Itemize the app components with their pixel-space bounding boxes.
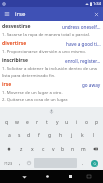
staticText: z <box>20 146 23 153</box>
staticText: j <box>71 132 73 139</box>
staticText: w <box>15 119 19 126</box>
button[interactable]: Shift <box>1 142 16 156</box>
button[interactable]: g <box>44 129 55 142</box>
staticText: . <box>82 160 84 167</box>
button[interactable]: desvestirse <box>2 22 101 39</box>
button[interactable]: , <box>15 157 24 169</box>
button[interactable]: l <box>88 129 99 142</box>
button[interactable]: q <box>1 116 12 129</box>
button[interactable]: r <box>32 116 42 129</box>
button[interactable]: w <box>12 116 22 129</box>
staticText: 1. Moverse de un lugar a otro. <box>2 89 63 95</box>
button[interactable]: e <box>22 116 32 129</box>
button[interactable]: irse <box>15 7 26 21</box>
staticText: ?123 <box>4 161 13 166</box>
staticText: x <box>31 146 34 153</box>
staticText: i <box>76 119 78 126</box>
staticText: t <box>46 119 48 126</box>
staticText: undress oneself… <box>62 24 101 30</box>
staticText: c <box>42 146 45 153</box>
button[interactable]: Backspace <box>88 142 102 156</box>
staticText: 1. Solicitar a obtener la inclusión dent… <box>2 65 97 71</box>
button[interactable]: y <box>52 116 62 129</box>
button[interactable]: o <box>82 116 92 129</box>
staticText: 1. Proporcionarse diversión a uno mismo. <box>2 48 86 54</box>
staticText: , <box>19 160 21 167</box>
staticText: e <box>26 119 29 126</box>
staticText: irse <box>15 10 26 18</box>
button[interactable]: Recent apps <box>63 170 77 183</box>
staticText: enroll, register… <box>65 58 101 64</box>
staticText: y <box>56 119 59 126</box>
button[interactable]: divertirse <box>2 39 101 56</box>
button[interactable]: Emoji <box>24 157 33 169</box>
button[interactable]: Voice input <box>47 107 56 116</box>
staticText: o <box>85 119 89 126</box>
staticText: d <box>27 132 31 139</box>
staticText: inscribirse <box>2 57 28 64</box>
staticText: have a good ti… <box>66 41 101 47</box>
staticText: s <box>18 132 21 139</box>
staticText: h <box>59 132 63 139</box>
staticText: divertirse <box>2 40 27 47</box>
staticText: lista para determinado fin. <box>2 72 56 78</box>
staticText: v <box>52 146 55 153</box>
button[interactable]: k <box>77 129 88 142</box>
staticText: q <box>5 119 9 126</box>
staticText: g <box>48 132 52 139</box>
button[interactable]: Search <box>87 157 102 169</box>
button[interactable]: h <box>55 129 66 142</box>
button[interactable]: u <box>62 116 72 129</box>
staticText: n <box>71 146 75 153</box>
button[interactable]: n <box>68 142 78 156</box>
staticText: l <box>93 132 95 139</box>
staticText: u <box>65 119 69 126</box>
button[interactable]: f <box>34 129 44 142</box>
button[interactable]: x <box>27 142 38 156</box>
staticText: irse <box>2 81 12 88</box>
button[interactable]: Switch keyboard <box>82 170 96 183</box>
button[interactable]: t <box>42 116 52 129</box>
staticText: desvestirse <box>2 23 31 30</box>
staticText: r <box>36 119 39 126</box>
button[interactable]: c <box>38 142 48 156</box>
staticText: m <box>81 146 86 153</box>
button[interactable]: Back <box>17 170 31 183</box>
button[interactable]: d <box>24 129 34 142</box>
button[interactable]: irse <box>2 80 101 106</box>
staticText: k <box>81 132 84 139</box>
button[interactable]: i <box>72 116 82 129</box>
button[interactable]: m <box>78 142 88 156</box>
button[interactable]: j <box>66 129 77 142</box>
button[interactable]: s <box>14 129 24 142</box>
staticText: p <box>95 119 99 126</box>
staticText: 1:34 <box>93 1 101 6</box>
button[interactable]: . <box>78 157 87 169</box>
staticText: 1. Sacarse la ropa de manera total o par… <box>2 31 90 37</box>
button[interactable]: inscribirse <box>2 56 101 80</box>
staticText: 2. Quitarse una cosa de un lugar. <box>2 96 68 102</box>
staticText: go away <box>82 82 101 88</box>
button[interactable]: a <box>4 129 14 142</box>
button[interactable]: v <box>48 142 58 156</box>
staticText: b <box>61 146 65 153</box>
button[interactable]: z <box>16 142 27 156</box>
button[interactable]: b <box>58 142 68 156</box>
button[interactable]: Navigation menu <box>1 8 13 20</box>
button[interactable]: Clear search <box>90 8 102 20</box>
staticText: f <box>38 132 40 139</box>
button[interactable]: Home <box>40 170 54 183</box>
button[interactable]: ?123 <box>1 157 15 169</box>
button[interactable]: p <box>92 116 102 129</box>
staticText: a <box>8 132 11 139</box>
